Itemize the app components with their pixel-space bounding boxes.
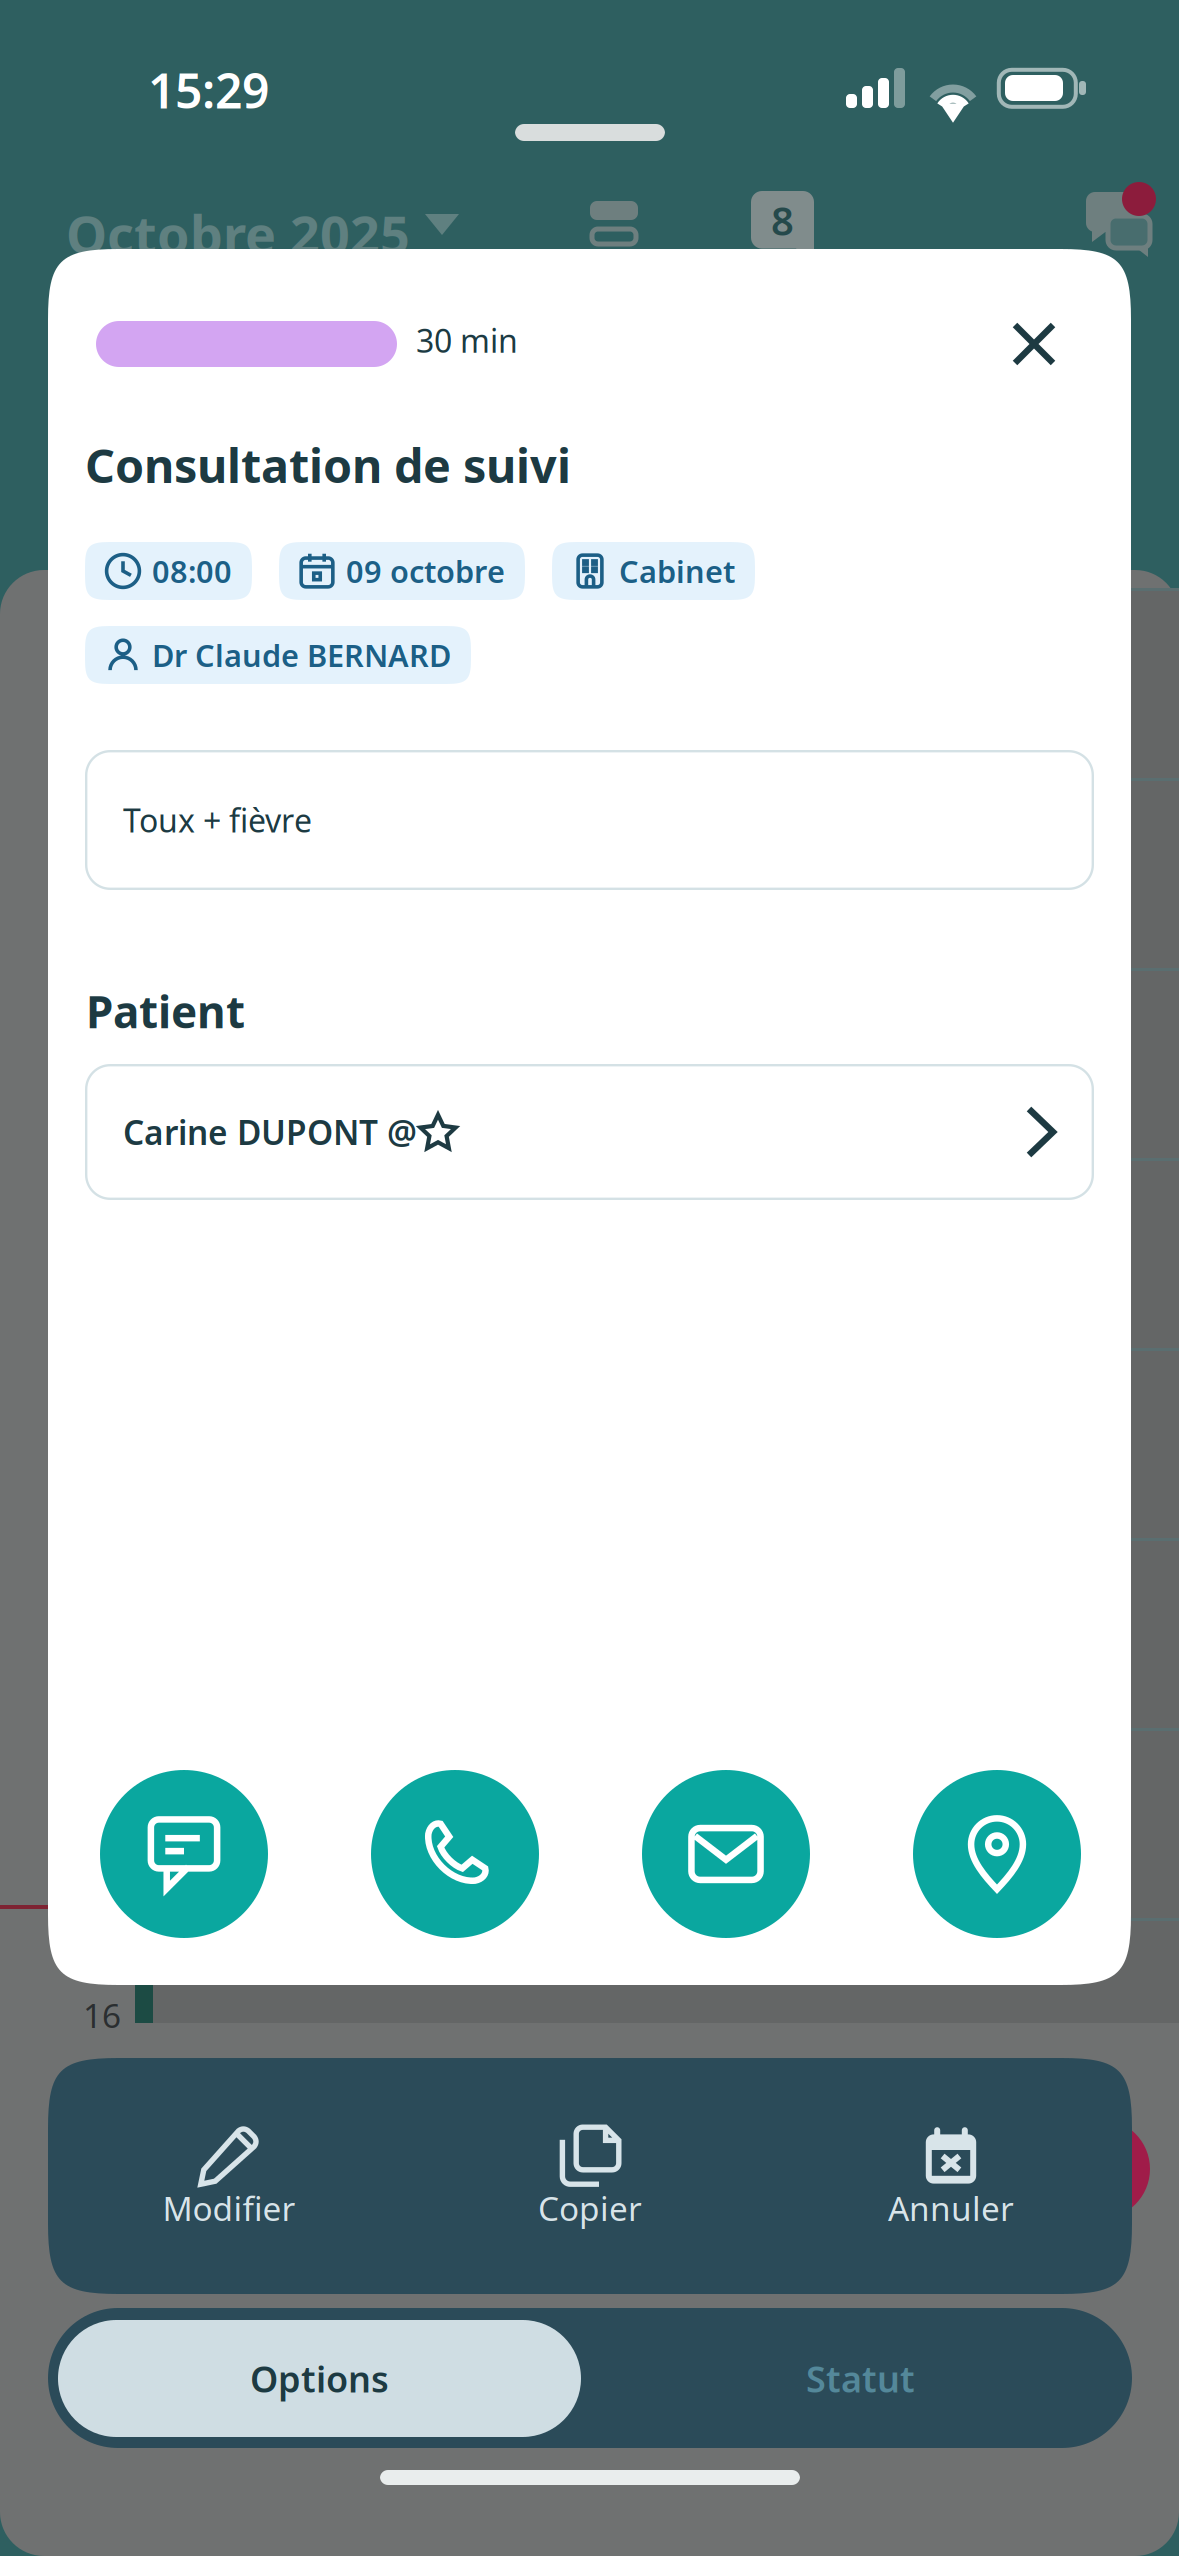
staticText: Toux + fièvre xyxy=(123,799,312,841)
button[interactable]: Statut xyxy=(599,2320,1122,2437)
button[interactable]: Options xyxy=(58,2320,581,2437)
staticText: 30 min xyxy=(416,319,518,361)
button[interactable]: Modifier xyxy=(48,2058,409,2294)
button[interactable]: Appeler xyxy=(371,1770,539,1938)
staticText: Statut xyxy=(806,2355,915,2402)
staticText: Options xyxy=(250,2355,389,2402)
staticText: Copier xyxy=(538,2186,642,2230)
staticText: Cabinet xyxy=(619,551,735,591)
staticText: Carine DUPONT @ xyxy=(123,1110,417,1154)
button[interactable]: Fermer xyxy=(988,298,1080,390)
staticText: 15:29 xyxy=(148,58,269,122)
staticText: 8 xyxy=(771,193,794,246)
button[interactable]: Carine DUPONT @ xyxy=(85,1064,1094,1200)
button[interactable]: Localisation xyxy=(913,1770,1081,1938)
staticText: Octobre 2025 xyxy=(66,199,410,268)
staticText: 16 xyxy=(83,1993,121,2037)
staticText: Dr Claude BERNARD xyxy=(152,635,451,675)
button[interactable]: Affichage xyxy=(574,185,654,260)
button[interactable]: Nombre de jours xyxy=(751,191,814,263)
staticText: Modifier xyxy=(162,2186,295,2230)
button[interactable]: Message xyxy=(100,1770,268,1938)
staticText: Consultation de suivi xyxy=(85,434,571,496)
button[interactable]: Courriel xyxy=(642,1770,810,1938)
staticText: Patient xyxy=(86,982,245,1040)
staticText: Annuler xyxy=(888,2186,1014,2230)
staticText: 08:00 xyxy=(152,551,232,591)
staticText: 09 octobre xyxy=(346,551,505,591)
button[interactable]: Messages xyxy=(1072,178,1164,272)
button[interactable]: Copier xyxy=(409,2058,770,2294)
button[interactable]: Annuler xyxy=(770,2058,1131,2294)
